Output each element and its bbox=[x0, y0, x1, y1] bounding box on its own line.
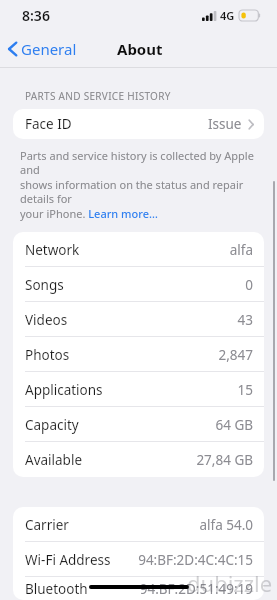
staticText: Applications bbox=[25, 381, 103, 399]
button[interactable]: Bluetooth bbox=[13, 577, 264, 600]
staticText: Network bbox=[25, 241, 80, 259]
staticText: Wi-Fi Address bbox=[25, 551, 111, 569]
staticText: Available bbox=[25, 451, 82, 469]
button[interactable]: Applications bbox=[13, 372, 264, 407]
button[interactable]: Available bbox=[13, 442, 264, 477]
staticText: Issue bbox=[208, 115, 242, 133]
button[interactable]: Face ID bbox=[13, 109, 264, 139]
staticText: Capacity bbox=[25, 416, 79, 434]
staticText: Face ID bbox=[25, 115, 72, 133]
button[interactable]: Photos bbox=[13, 337, 264, 372]
staticText: 94:BF:2D:4C:4C:15 bbox=[138, 551, 253, 569]
button[interactable]: Back bbox=[0, 35, 85, 63]
staticText: Parts and service history is collected b… bbox=[20, 148, 259, 177]
staticText: About bbox=[117, 39, 163, 59]
staticText: 43 bbox=[237, 311, 253, 329]
staticText: 15 bbox=[237, 381, 253, 399]
staticText: Carrier bbox=[25, 516, 69, 534]
staticText: your iPhone. Learn more… bbox=[20, 206, 158, 221]
staticText: Photos bbox=[25, 346, 70, 364]
staticText: 27,84 GB bbox=[196, 451, 253, 469]
staticText: dubizzle bbox=[187, 568, 273, 598]
staticText: 4G bbox=[220, 8, 235, 23]
button[interactable]: Wi-Fi Address bbox=[13, 542, 264, 577]
staticText: 2,847 bbox=[218, 346, 253, 364]
button[interactable]: your iPhone. Learn more… bbox=[20, 206, 158, 221]
staticText: 64 GB bbox=[215, 416, 253, 434]
staticText: shows information on the status and repa… bbox=[20, 177, 259, 206]
staticText: 94:BF:2D:51:49:19 bbox=[139, 580, 253, 598]
staticText: Videos bbox=[25, 311, 68, 329]
button[interactable]: Carrier bbox=[13, 507, 264, 542]
staticText: alfa bbox=[229, 241, 253, 259]
staticText: alfa 54.0 bbox=[199, 516, 253, 534]
button[interactable]: Capacity bbox=[13, 407, 264, 442]
button[interactable]: Videos bbox=[13, 302, 264, 337]
staticText: Bluetooth bbox=[25, 580, 88, 598]
other: Back bbox=[8, 41, 17, 57]
button[interactable]: Network bbox=[13, 232, 264, 267]
staticText: Songs bbox=[25, 276, 64, 294]
staticText: 0 bbox=[245, 276, 253, 294]
button[interactable]: Songs bbox=[13, 267, 264, 302]
staticText: General bbox=[21, 39, 77, 59]
staticText: 8:36 bbox=[22, 6, 50, 25]
staticText: PARTS AND SERVICE HISTORY bbox=[25, 89, 171, 103]
